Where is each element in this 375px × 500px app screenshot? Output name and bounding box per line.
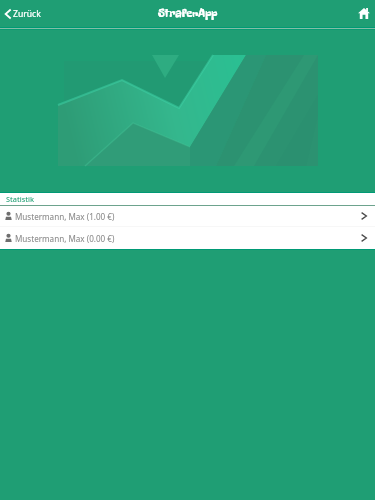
staticText: Mustermann, Max (0.00 €) [15,233,115,244]
button[interactable]: Mustermann, Max (1.00 €) [0,206,375,226]
button[interactable]: Home [355,5,372,22]
staticText: Zurück [13,8,41,20]
staticText: Statistik [6,194,35,204]
staticText: StrafenApp [158,6,218,21]
button[interactable]: Zurück [0,0,49,27]
staticText: Mustermann, Max (1.00 €) [15,211,115,222]
button[interactable]: Mustermann, Max (0.00 €) [0,227,375,249]
